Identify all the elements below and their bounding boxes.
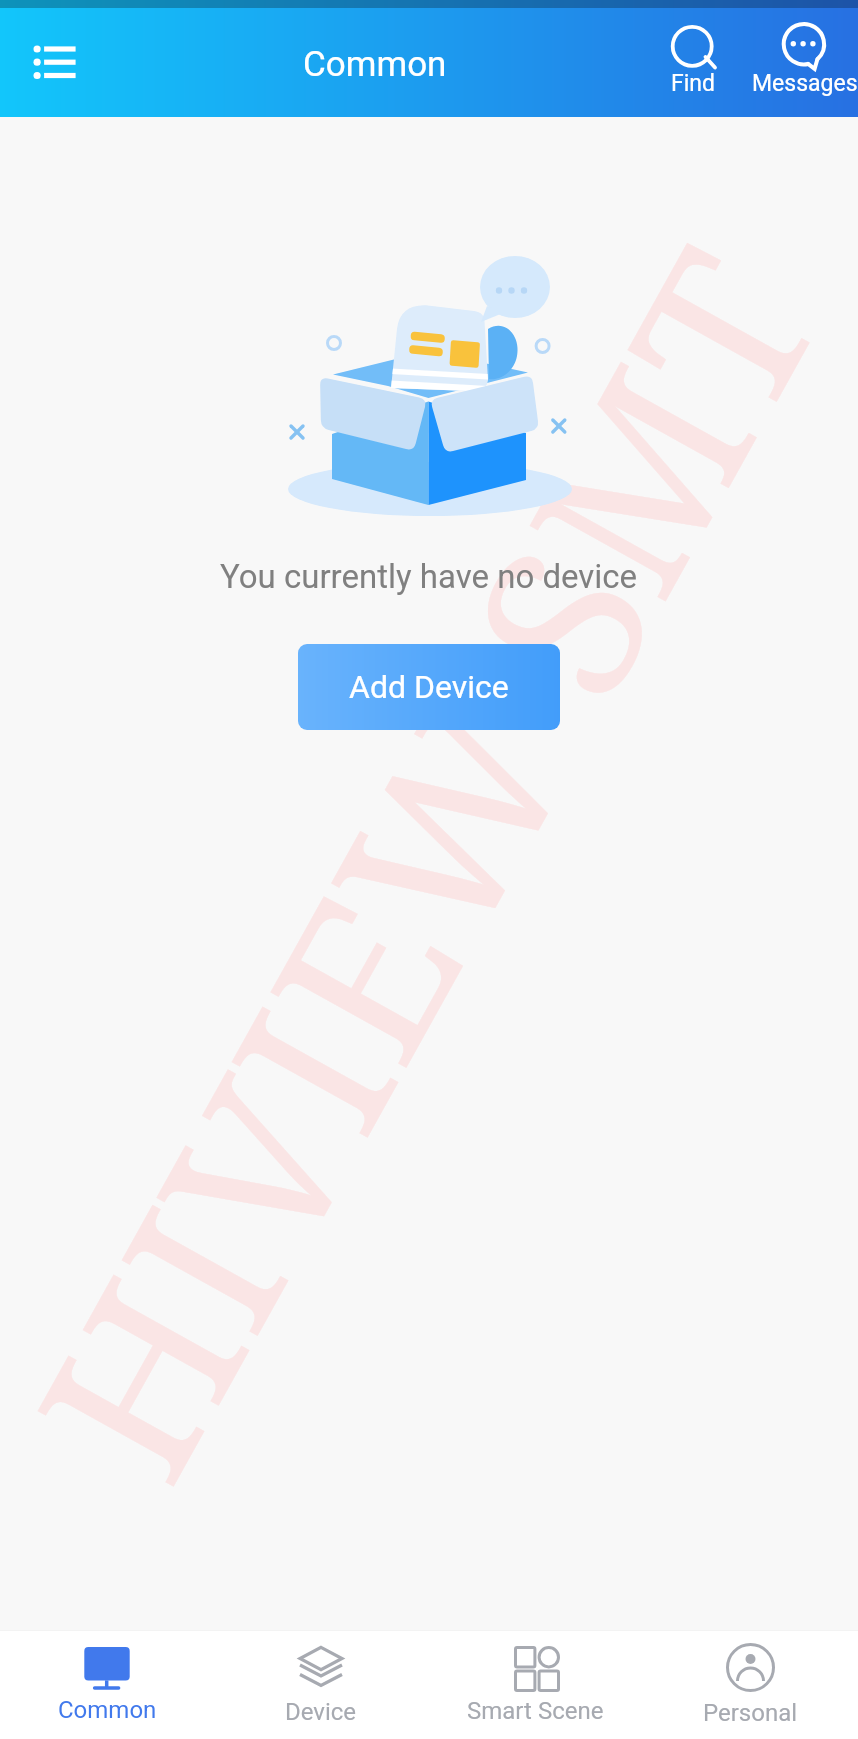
- button[interactable]: Add Device: [298, 644, 560, 730]
- staticText: Smart Scene: [467, 1697, 604, 1725]
- button[interactable]: Device: [214, 1637, 428, 1734]
- button[interactable]: Messages: [746, 14, 858, 104]
- button[interactable]: Menu: [10, 22, 100, 102]
- staticText: Personal: [703, 1699, 798, 1727]
- staticText: Common: [58, 1696, 157, 1724]
- staticText: Messages: [752, 70, 858, 97]
- staticText: HIVIEW SMT: [0, 200, 858, 1524]
- button[interactable]: Find: [650, 14, 736, 104]
- button[interactable]: Common: [0, 1639, 214, 1732]
- staticText: Common: [303, 44, 447, 85]
- staticText: Device: [285, 1698, 357, 1726]
- button[interactable]: Personal: [643, 1635, 858, 1735]
- staticText: Add Device: [349, 668, 509, 706]
- staticText: You currently have no device: [220, 557, 638, 596]
- staticText: Find: [671, 70, 715, 97]
- button[interactable]: Smart Scene: [428, 1638, 643, 1733]
